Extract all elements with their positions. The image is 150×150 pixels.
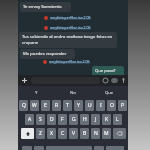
staticText: X (50, 130, 53, 137)
staticText: ompleta.perfiloz.iso.2.06 (50, 15, 91, 20)
staticText: ompleta.perfiloz.iso.2.06 (50, 25, 91, 30)
staticText: P (121, 102, 125, 109)
button[interactable]: , (34, 146, 44, 150)
button[interactable]: Shift (21, 128, 34, 139)
button[interactable]: Me puedes responder (20, 49, 75, 59)
staticText: C (61, 130, 65, 137)
button[interactable]: L (113, 114, 122, 125)
button[interactable]: W (30, 100, 39, 111)
staticText: B (83, 130, 87, 137)
button[interactable]: Y (74, 100, 83, 111)
staticText: Y (77, 102, 80, 109)
button[interactable]: Emoji (101, 76, 110, 85)
button[interactable]: K (102, 114, 111, 125)
button[interactable]: G (69, 114, 78, 125)
staticText: F (61, 116, 64, 123)
staticText: G (72, 116, 76, 123)
staticText: Q (22, 102, 26, 109)
button[interactable]: I (96, 100, 105, 111)
button[interactable]: N (91, 128, 100, 139)
button[interactable]: Q (19, 100, 28, 111)
button[interactable]: V (69, 128, 78, 139)
staticText: Que pasa? (95, 68, 116, 74)
staticText: J (95, 116, 97, 123)
button[interactable] (106, 146, 124, 150)
button[interactable]: Tus subiendo al andro mañana tengo fotos… (19, 32, 117, 48)
staticText: Que (105, 90, 114, 96)
button[interactable]: Y (18, 86, 54, 99)
button[interactable]: Camera (110, 76, 119, 85)
button[interactable]: D (47, 114, 56, 125)
button[interactable]: C (58, 128, 67, 139)
button[interactable]: Que (91, 86, 128, 99)
staticText: T (66, 102, 69, 109)
button[interactable]: J (91, 114, 100, 125)
button[interactable]: Backspace (113, 128, 126, 139)
staticText: Tus subiendo al andro mañana tengo fotos… (22, 34, 113, 46)
staticText: Y (35, 90, 38, 96)
staticText: E (44, 102, 47, 109)
staticText: R (55, 102, 59, 109)
staticText: W (32, 102, 37, 109)
button[interactable]: M (102, 128, 111, 139)
staticText: N (94, 130, 98, 137)
button[interactable]: Te envoy Sarmiento (20, 2, 71, 12)
button[interactable]: R (52, 100, 61, 111)
staticText: K (105, 116, 109, 123)
button[interactable]: ompleta.perfiloz.iso.2.06 (44, 14, 91, 21)
button[interactable]: O (107, 100, 116, 111)
button[interactable]: H (80, 114, 89, 125)
staticText: D (50, 116, 54, 123)
button[interactable]: ?123 (22, 146, 32, 150)
button[interactable]: X (47, 128, 56, 139)
staticText: No (70, 90, 76, 96)
button[interactable]: Voice message (119, 76, 128, 85)
button[interactable]: Z (36, 128, 45, 139)
staticText: S (39, 116, 42, 123)
button[interactable]: Que pasa? (92, 66, 124, 76)
button[interactable]: B (80, 128, 89, 139)
button[interactable]: P (118, 100, 127, 111)
button[interactable]: . (94, 146, 104, 150)
staticText: U (88, 102, 92, 109)
staticText: I (100, 102, 102, 109)
button[interactable]: U (85, 100, 94, 111)
button[interactable]: S (36, 114, 45, 125)
staticText: M (104, 130, 109, 137)
staticText: Z (39, 130, 42, 137)
staticText: H (83, 116, 87, 123)
staticText: A (28, 116, 32, 123)
button[interactable]: A (25, 114, 34, 125)
staticText: ompleta.perfiloz.iso.2.06 (49, 59, 90, 64)
button[interactable]: ompleta.perfiloz.iso.2.06 (44, 24, 91, 31)
button[interactable]: F (58, 114, 67, 125)
button[interactable]: ompleta.perfiloz.iso.2.06 (43, 58, 90, 65)
staticText: O (110, 102, 114, 109)
staticText: Te envoy Sarmiento (23, 4, 62, 10)
button[interactable]: No (54, 86, 91, 99)
staticText: L (116, 116, 119, 123)
staticText: Me puedes responder (23, 51, 67, 57)
staticText: V (72, 130, 76, 137)
button[interactable]: T (63, 100, 72, 111)
button[interactable]: E (41, 100, 50, 111)
button[interactable]: Attach (18, 75, 31, 86)
